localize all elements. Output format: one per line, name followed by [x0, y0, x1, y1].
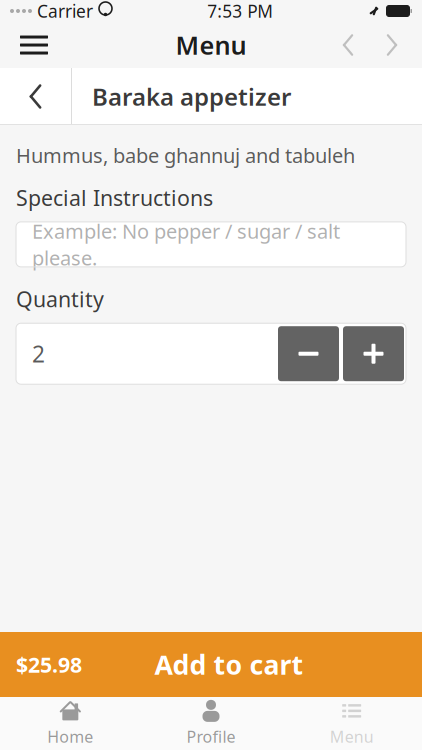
staticText: Quantity: [16, 285, 104, 313]
staticText: Baraka appetizer: [92, 81, 291, 112]
staticText: Example: No pepper / sugar / salt please…: [32, 218, 340, 271]
button[interactable]: Home: [0, 698, 141, 748]
button[interactable]: Menu: [281, 698, 422, 748]
button[interactable]: Decrease quantity: [278, 326, 339, 381]
button[interactable]: Increase quantity: [343, 326, 404, 381]
button[interactable]: Back: [0, 68, 71, 125]
staticText: 2: [32, 339, 45, 369]
staticText: Home: [47, 726, 93, 747]
staticText: Hummus, babe ghannuj and tabuleh: [16, 142, 355, 169]
staticText: Menu: [330, 726, 374, 747]
staticText: Profile: [186, 726, 235, 747]
button[interactable]: Open navigation menu: [8, 23, 60, 67]
staticText: Add to cart: [154, 647, 303, 682]
staticText: Menu: [175, 28, 246, 62]
button[interactable]: Back: [326, 23, 370, 67]
button[interactable]: Forward: [370, 23, 414, 67]
staticText: Carrier: [37, 0, 93, 22]
staticText: $25.98: [16, 650, 82, 679]
button[interactable]: $25.98: [0, 632, 422, 697]
staticText: 7:53 PM: [207, 0, 273, 22]
button[interactable]: Profile: [141, 698, 281, 748]
staticText: Special Instructions: [16, 184, 213, 212]
